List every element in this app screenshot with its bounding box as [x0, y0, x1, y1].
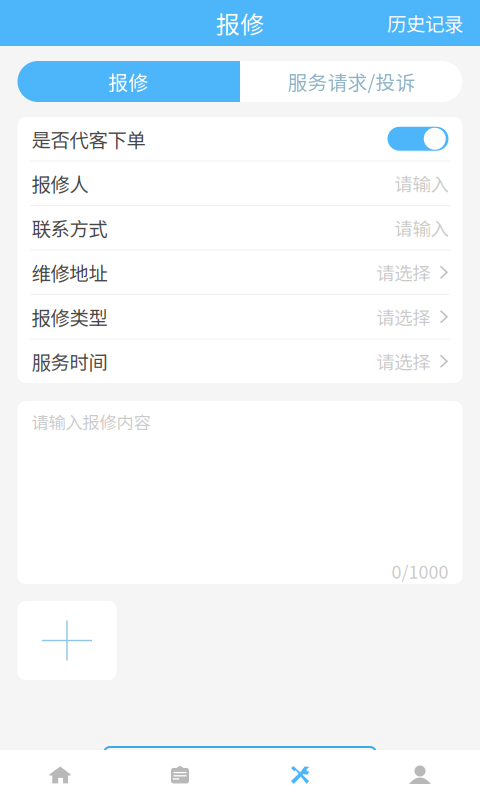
staticText: 是否代客下单 [31, 125, 145, 153]
button[interactable]: 维修地址 [17, 250, 462, 294]
button[interactable]: 服务请求/投诉 [240, 61, 463, 102]
button[interactable]: 是否代客下单 [17, 117, 462, 160]
button[interactable]: 首页 [0, 750, 120, 800]
staticText: 请选择 [376, 348, 430, 374]
staticText: 请输入 [394, 214, 448, 241]
button[interactable]: 联系方式 [17, 206, 462, 249]
staticText: 0/1000 [391, 558, 448, 584]
staticText: 报修类型 [31, 303, 107, 331]
button[interactable]: 报修 [17, 61, 240, 102]
button[interactable]: 服务时间 [17, 339, 462, 383]
staticText: 服务时间 [31, 347, 107, 375]
staticText: 服务请求/投诉 [287, 67, 415, 96]
button[interactable]: 我的 [360, 750, 480, 800]
button[interactable]: 报修 [240, 750, 360, 800]
staticText: 维修地址 [31, 258, 107, 286]
button[interactable]: 添加图片 [17, 601, 116, 680]
staticText: 请输入报修内容 [31, 409, 150, 434]
staticText: 联系方式 [31, 214, 107, 242]
staticText: 请选择 [376, 303, 430, 330]
button[interactable]: 报修人 [17, 161, 462, 205]
button[interactable]: 报修类型 [17, 295, 462, 338]
staticText: 历史记录 [387, 9, 463, 37]
button[interactable]: 历史记录 [370, 0, 480, 46]
staticText: 报修 [108, 67, 148, 96]
staticText: 报修人 [31, 169, 88, 197]
staticText: 请选择 [376, 259, 430, 285]
button[interactable]: 工单 [120, 750, 240, 800]
staticText: 报修 [216, 6, 264, 40]
staticText: 请输入 [394, 170, 448, 196]
button[interactable]: 提交 [104, 747, 376, 791]
